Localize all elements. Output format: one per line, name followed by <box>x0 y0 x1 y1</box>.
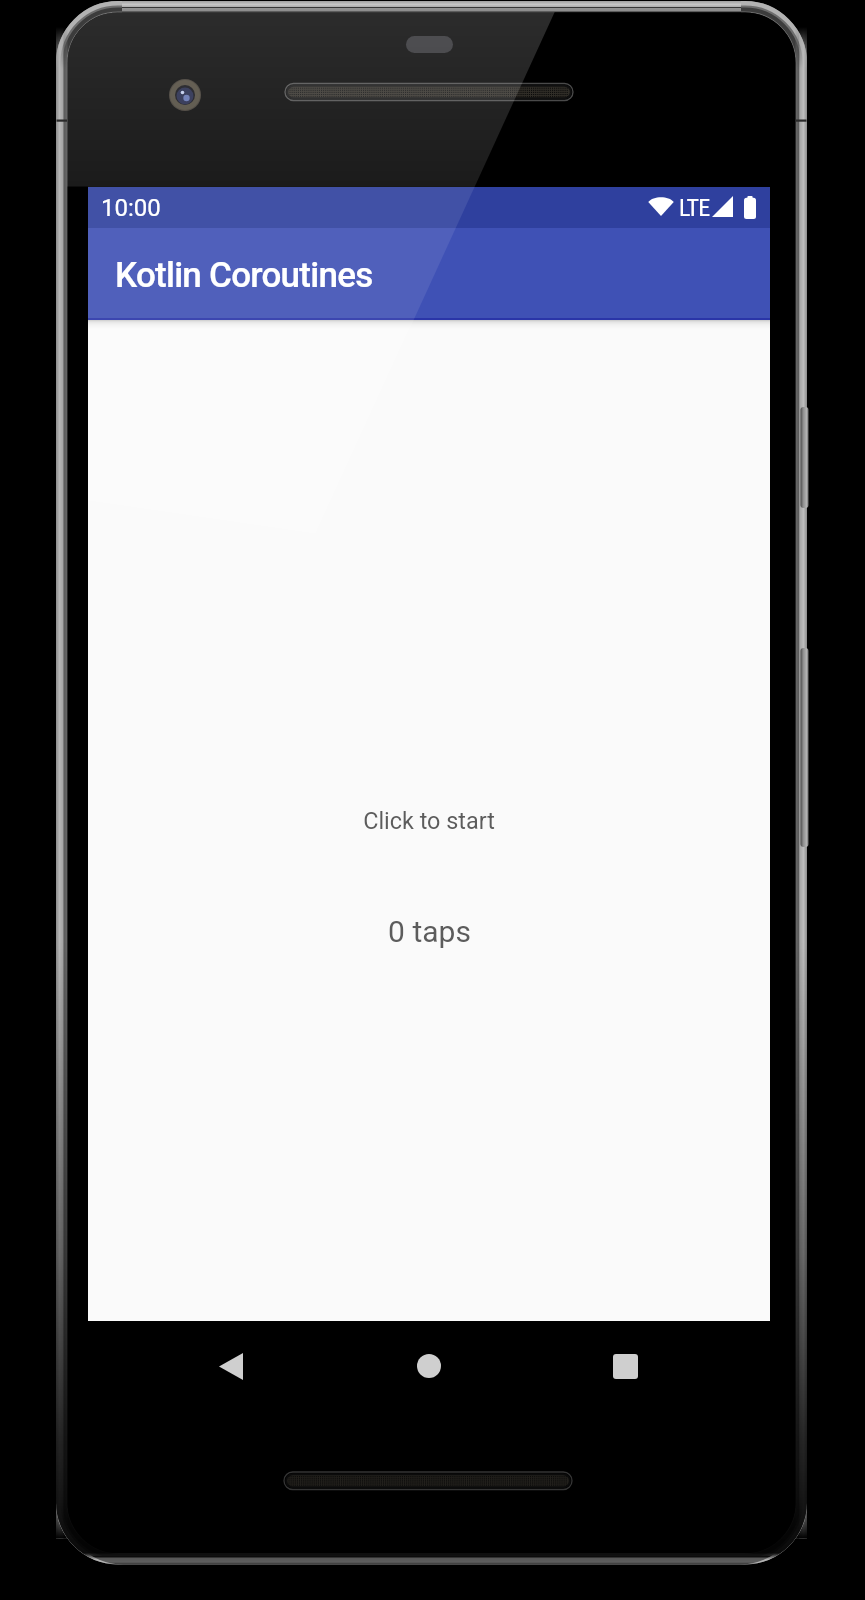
staticText: 0 taps <box>388 914 471 949</box>
staticText: Click to start <box>363 807 495 834</box>
button[interactable]: Back <box>201 1321 261 1411</box>
staticText: 10:00 <box>101 194 161 222</box>
staticText: Kotlin Coroutines <box>115 255 373 296</box>
staticText: LTE <box>679 194 710 222</box>
button[interactable]: Home <box>399 1321 459 1411</box>
button[interactable]: Click to start <box>88 320 770 1321</box>
button[interactable]: Recent apps <box>595 1321 655 1411</box>
